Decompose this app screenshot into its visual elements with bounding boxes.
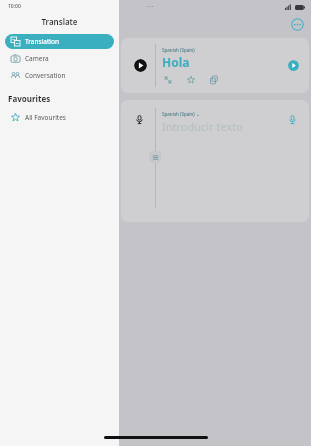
button[interactable]: Keyboard [149,151,161,163]
button[interactable]: Play source [134,59,147,72]
button[interactable]: Voice input target [287,114,298,125]
button[interactable]: Introducir texto [162,119,243,134]
button[interactable]: More options [291,18,304,31]
staticText: All Favourites [25,113,66,122]
button[interactable]: Camera [5,51,114,66]
button[interactable]: Conversation [5,68,114,83]
staticText: Camera [25,54,49,63]
staticText: Hola [162,54,190,70]
button[interactable]: Favourite [185,74,196,85]
staticText: 10:00 [8,3,21,10]
staticText: Translation [25,37,59,46]
button[interactable]: Voice input source [134,114,145,125]
button[interactable]: Copy [208,74,219,85]
staticText: Spanish (Spain) [162,47,195,53]
button[interactable]: Translation [5,34,114,49]
button[interactable]: All Favourites [5,110,114,125]
button[interactable]: Play translation [288,60,299,71]
button[interactable]: Expand [162,74,173,85]
staticText: Favourites [8,93,51,104]
staticText: Translate [0,16,119,27]
staticText: Spanish (Spain) ⌄ [162,111,200,117]
staticText: • • • [147,4,154,9]
staticText: Conversation [25,71,66,80]
